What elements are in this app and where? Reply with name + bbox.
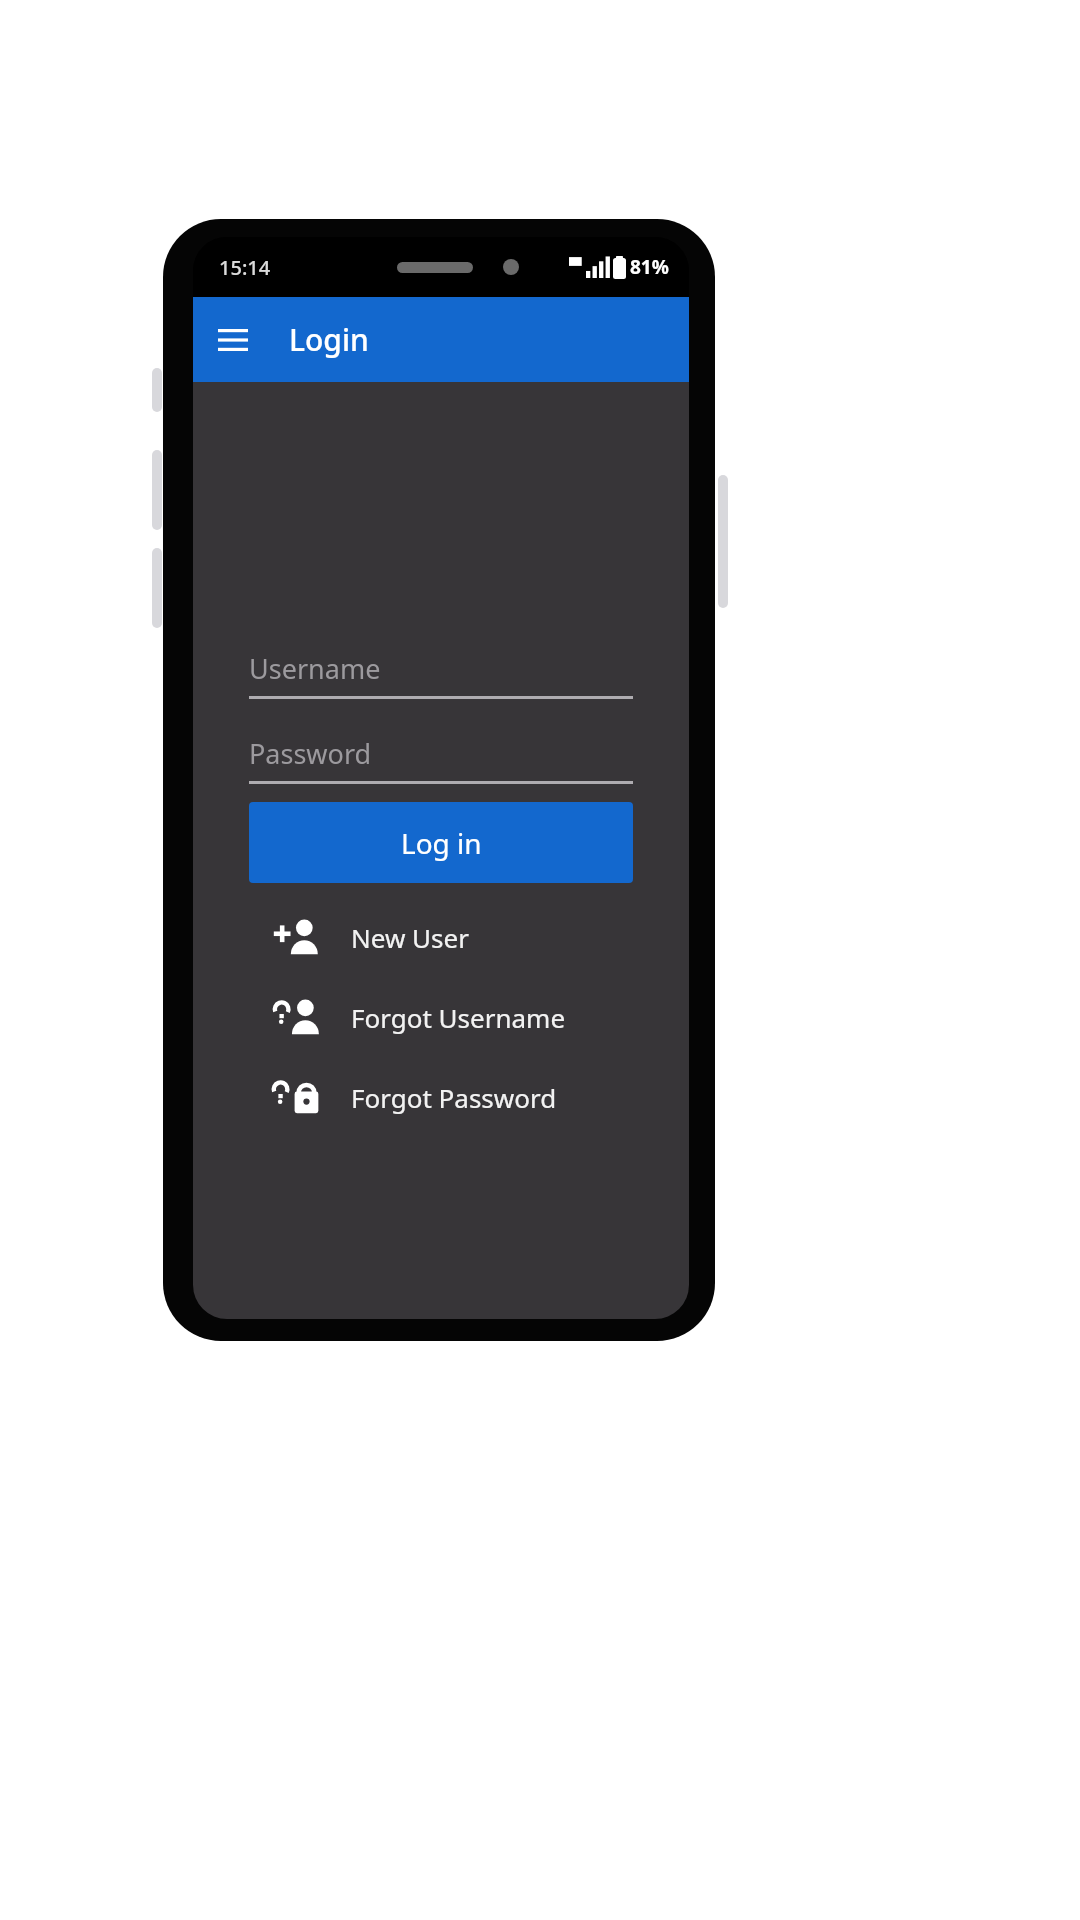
button[interactable]: Log in (249, 802, 633, 883)
button[interactable]: Forgot Username (193, 984, 689, 1050)
staticText: Username (249, 650, 381, 687)
staticText: Log in (401, 824, 482, 862)
button[interactable]: New User (193, 904, 689, 970)
staticText: 15:14 (219, 254, 271, 281)
staticText: New User (351, 920, 469, 955)
staticText: Login (289, 319, 369, 360)
staticText: Forgot Username (351, 1000, 566, 1035)
button[interactable]: Password (249, 725, 633, 784)
button[interactable]: Username (249, 640, 633, 699)
staticText: Forgot Password (351, 1080, 557, 1115)
button[interactable]: Forgot Password (193, 1064, 689, 1130)
staticText: Password (249, 735, 372, 772)
staticText: 81% (630, 254, 669, 280)
button[interactable]: Open navigation menu (205, 312, 261, 368)
